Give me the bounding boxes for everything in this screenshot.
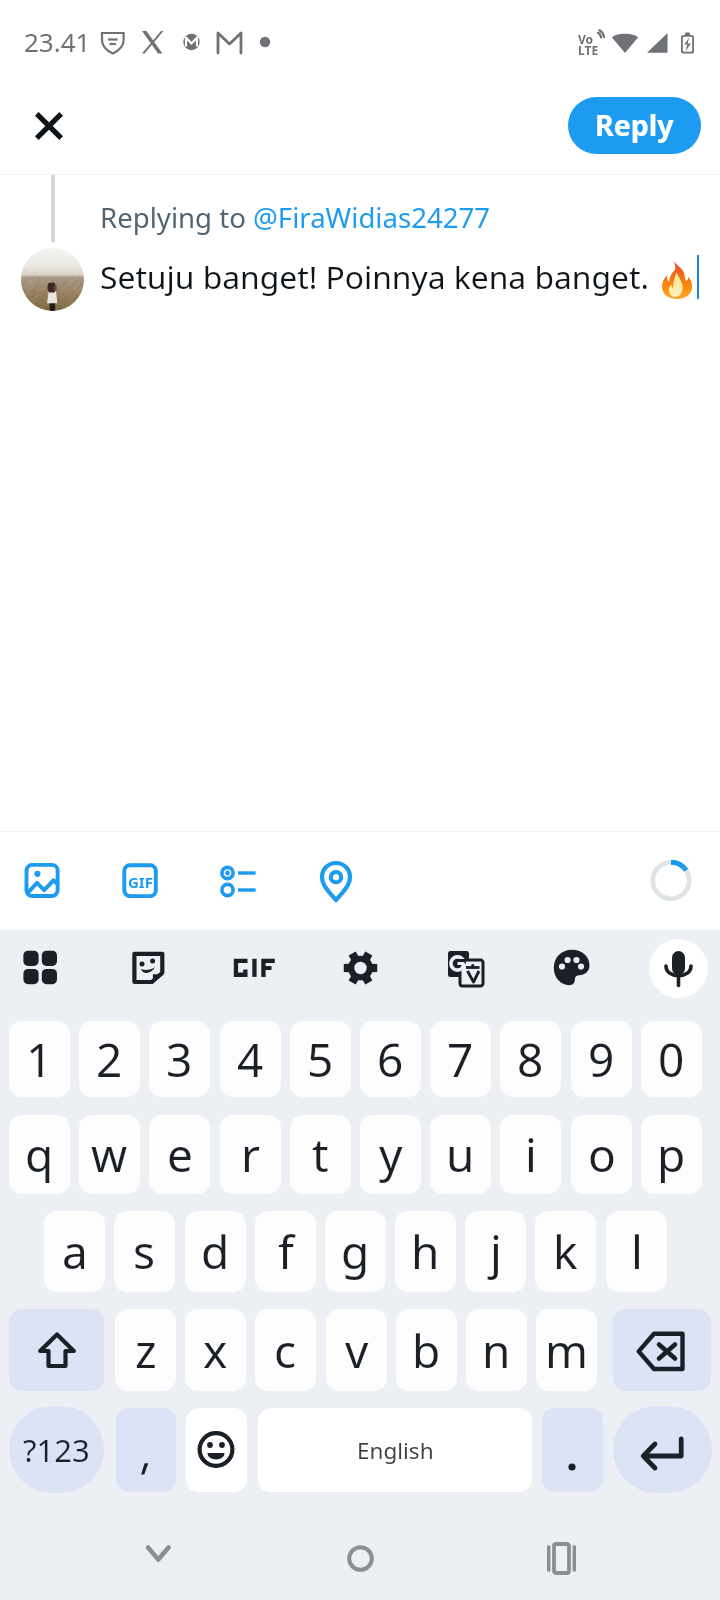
button[interactable]: o <box>571 1115 632 1194</box>
staticText: Reply <box>595 106 674 145</box>
staticText: Vo <box>578 31 594 47</box>
staticText: GIF <box>128 872 153 892</box>
button[interactable]: 0 <box>641 1021 702 1097</box>
button[interactable]: f <box>255 1211 316 1292</box>
staticText: o <box>588 1123 616 1186</box>
button[interactable]: English <box>258 1408 532 1492</box>
button[interactable] <box>116 1408 176 1492</box>
staticText: k <box>553 1220 578 1283</box>
button[interactable]: Home <box>320 1514 400 1594</box>
button[interactable]: 4 <box>220 1021 281 1097</box>
button[interactable]: 9 <box>571 1021 632 1097</box>
staticText: v <box>345 1319 369 1382</box>
staticText: 2 <box>96 1028 123 1091</box>
button[interactable]: Reply <box>568 97 701 154</box>
button[interactable]: a <box>44 1211 105 1292</box>
staticText: 0 <box>658 1028 685 1091</box>
button[interactable]: t <box>290 1115 351 1194</box>
button[interactable]: Action <box>26 864 66 904</box>
staticText: b <box>412 1319 441 1382</box>
button[interactable]: q <box>9 1115 70 1194</box>
button[interactable]: Close <box>18 95 79 156</box>
staticText: e <box>167 1123 193 1186</box>
button[interactable]: i <box>500 1115 561 1194</box>
staticText: d <box>201 1220 230 1283</box>
staticText: y <box>379 1123 403 1186</box>
button[interactable]: h <box>395 1211 456 1292</box>
button[interactable]: p <box>641 1115 702 1194</box>
staticText: u <box>446 1123 475 1186</box>
button[interactable]: GIF keyboard <box>228 952 280 986</box>
staticText: n <box>482 1319 511 1382</box>
button[interactable]: m <box>536 1309 597 1391</box>
button[interactable]: Enter <box>613 1406 712 1493</box>
button[interactable]: k <box>535 1211 596 1292</box>
button[interactable]: 7 <box>430 1021 491 1097</box>
button[interactable]: 1 <box>9 1021 70 1097</box>
staticText: j <box>490 1220 502 1283</box>
button[interactable]: Emoji <box>186 1408 247 1492</box>
button[interactable]: e <box>149 1115 210 1194</box>
staticText: z <box>135 1319 157 1382</box>
button[interactable]: Backspace <box>613 1309 711 1391</box>
staticText: 8 <box>517 1028 544 1091</box>
button[interactable]: Shift <box>9 1309 104 1391</box>
staticText: q <box>25 1123 54 1186</box>
button[interactable]: v <box>326 1309 387 1391</box>
staticText: LTE <box>578 42 599 58</box>
button[interactable]: 5 <box>290 1021 351 1097</box>
button[interactable]: r <box>220 1115 281 1194</box>
button[interactable]: d <box>185 1211 246 1292</box>
button[interactable]: Hide keyboard <box>118 1514 198 1594</box>
button[interactable]: Voice input <box>649 939 708 998</box>
button[interactable]: 6 <box>360 1021 421 1097</box>
button[interactable]: y <box>360 1115 421 1194</box>
button[interactable]: ?123 <box>9 1406 104 1493</box>
button[interactable]: b <box>396 1309 457 1391</box>
button[interactable]: z <box>115 1309 176 1391</box>
button[interactable]: 3 <box>149 1021 210 1097</box>
button[interactable]: Action <box>322 863 362 903</box>
staticText: l <box>631 1220 643 1283</box>
staticText: 3 <box>166 1028 193 1091</box>
button[interactable]: GIF <box>124 865 156 897</box>
staticText: Setuju banget! Poinnya kena banget. <box>100 255 649 298</box>
staticText: f <box>278 1220 294 1283</box>
button[interactable]: Action <box>220 866 260 906</box>
button[interactable]: 2 <box>79 1021 140 1097</box>
staticText: c <box>274 1319 297 1382</box>
staticText: t <box>312 1123 329 1186</box>
button[interactable]: j <box>465 1211 526 1292</box>
staticText: i <box>525 1123 537 1186</box>
button[interactable]: x <box>185 1309 246 1391</box>
staticText: 9 <box>588 1028 615 1091</box>
button[interactable]: s <box>114 1211 175 1292</box>
button[interactable]: 8 <box>500 1021 561 1097</box>
staticText: 23.41 <box>24 24 91 59</box>
button[interactable]: w <box>79 1115 140 1194</box>
staticText: 1 <box>26 1028 53 1091</box>
staticText: x <box>203 1319 228 1382</box>
button[interactable]: l <box>606 1211 667 1292</box>
button[interactable]: u <box>430 1115 491 1194</box>
button[interactable]: Replying to @FiraWidias24277 <box>100 198 491 236</box>
staticText: g <box>341 1220 370 1283</box>
button[interactable]: c <box>255 1309 316 1391</box>
button[interactable]: g <box>325 1211 386 1292</box>
staticText: English <box>357 1435 434 1466</box>
button[interactable] <box>542 1408 603 1492</box>
staticText: h <box>411 1220 440 1283</box>
staticText: 6 <box>377 1028 404 1091</box>
staticText: s <box>133 1220 156 1283</box>
button[interactable]: n <box>466 1309 527 1391</box>
staticText: 5 <box>307 1028 334 1091</box>
staticText: 4 <box>237 1028 264 1091</box>
button[interactable]: Recent apps <box>521 1514 601 1594</box>
staticText: p <box>657 1123 686 1186</box>
staticText: w <box>91 1123 128 1186</box>
staticText: 7 <box>447 1028 474 1091</box>
staticText: ?123 <box>23 1429 90 1471</box>
staticText: a <box>62 1220 88 1283</box>
staticText: m <box>545 1319 589 1382</box>
staticText: r <box>241 1123 260 1186</box>
